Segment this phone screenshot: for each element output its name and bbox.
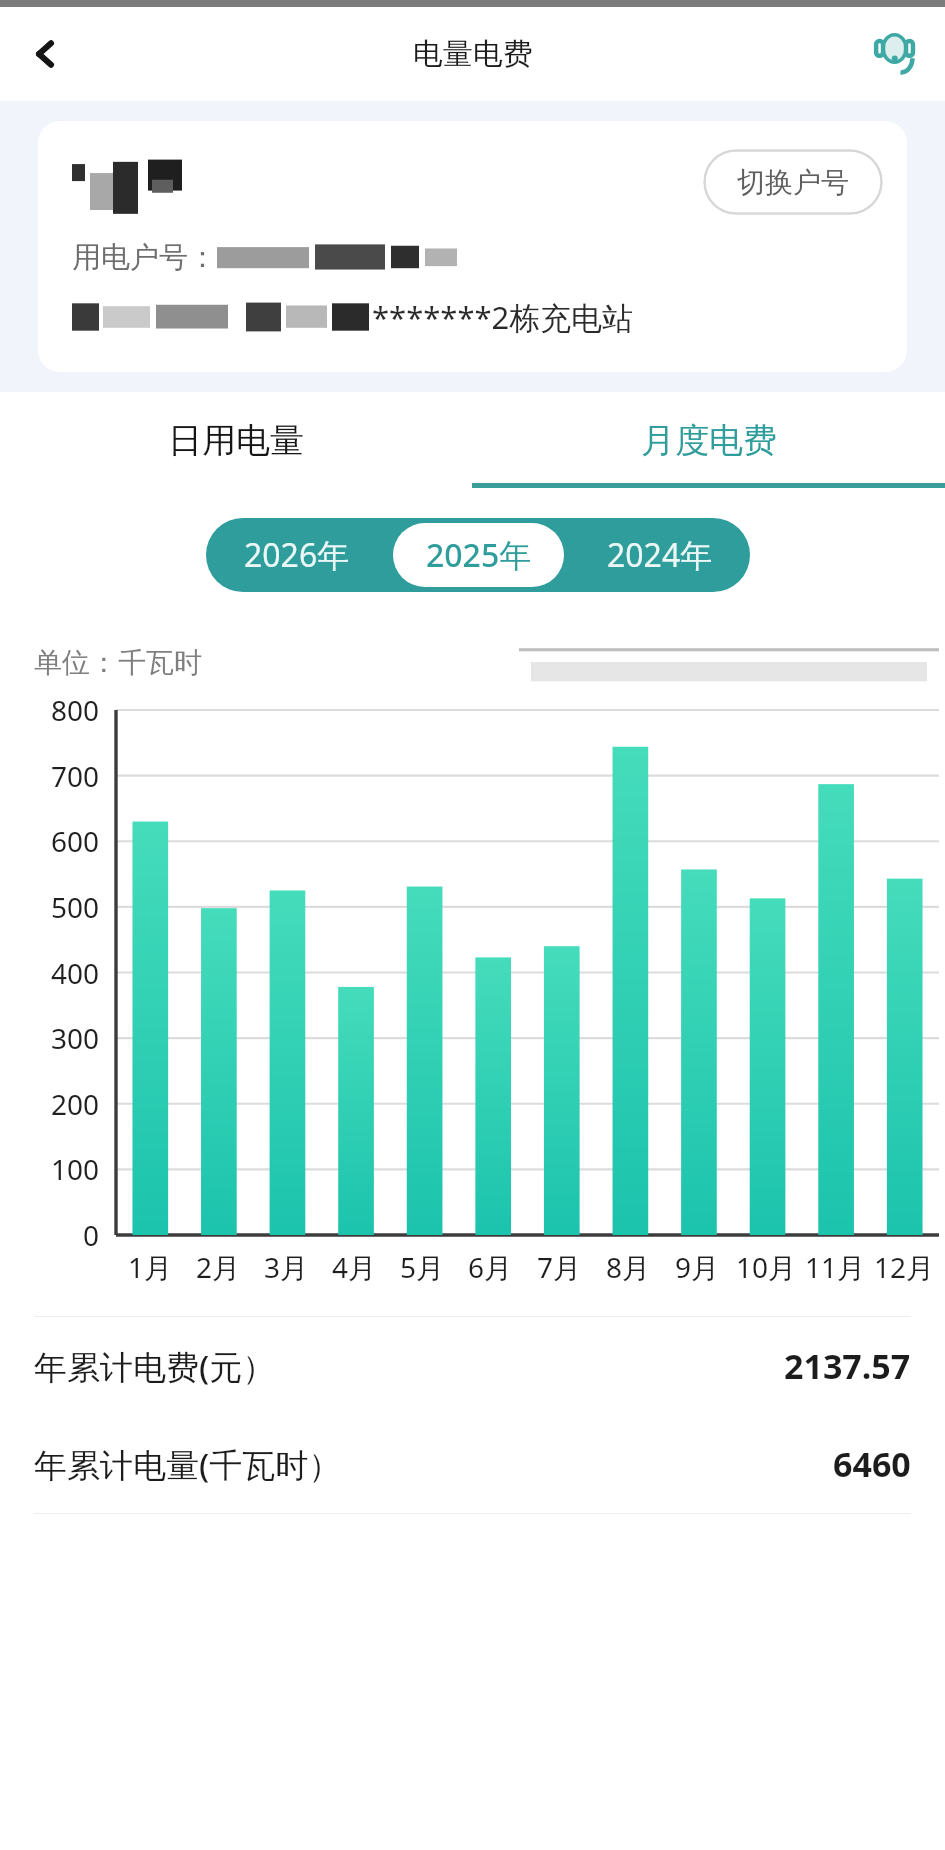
staticText: 800	[51, 691, 100, 729]
button[interactable]: 2025年	[393, 523, 564, 587]
button[interactable]: 日用电量	[0, 392, 472, 488]
staticText: 100	[51, 1150, 100, 1188]
staticText: 电量电费	[413, 35, 533, 73]
staticText: 700	[51, 757, 100, 795]
staticText: 切换户号	[737, 165, 849, 200]
staticText: 用电户号：	[72, 239, 217, 276]
staticText: 9月	[675, 1248, 720, 1286]
staticText: 2025年	[426, 533, 532, 577]
staticText: 10月	[736, 1248, 797, 1286]
staticText: 0	[83, 1216, 100, 1254]
staticText: 2137.57	[784, 1343, 911, 1389]
staticText: 年累计电费(元）	[34, 1344, 276, 1389]
staticText: 6460	[833, 1441, 911, 1487]
button[interactable]: 切换户号	[703, 149, 883, 215]
staticText: 1月	[128, 1248, 173, 1286]
staticText: 2024年	[607, 533, 713, 577]
staticText: 500	[51, 888, 100, 926]
staticText: 4月	[332, 1248, 377, 1286]
staticText: 单位：千瓦时	[34, 645, 202, 680]
staticText: 11月	[805, 1248, 866, 1286]
staticText: 3月	[264, 1248, 309, 1286]
staticText: *******2栋充电站	[372, 296, 634, 338]
staticText: 5月	[400, 1248, 445, 1286]
button[interactable]: 年累计电量(千瓦时）	[0, 1415, 945, 1513]
staticText: 6月	[468, 1248, 513, 1286]
button[interactable]: 月度电费	[472, 392, 945, 488]
staticText: 400	[51, 954, 100, 992]
button[interactable]: 2026年	[206, 518, 388, 592]
staticText: 2月	[196, 1248, 241, 1286]
staticText: 300	[51, 1019, 100, 1057]
staticText: 600	[51, 822, 100, 860]
button[interactable]: 客服	[863, 22, 927, 86]
button[interactable]: 返回	[16, 25, 74, 83]
staticText: 7月	[537, 1248, 582, 1286]
staticText: 年累计电量(千瓦时）	[34, 1442, 342, 1487]
staticText: 8月	[606, 1248, 651, 1286]
button[interactable]: 年累计电费(元）	[0, 1317, 945, 1415]
staticText: 日用电量	[168, 419, 304, 462]
staticText: 12月	[874, 1248, 935, 1286]
staticText: 200	[51, 1085, 100, 1123]
staticText: 2026年	[244, 533, 350, 577]
button[interactable]: 2024年	[569, 518, 750, 592]
staticText: 月度电费	[641, 419, 777, 462]
